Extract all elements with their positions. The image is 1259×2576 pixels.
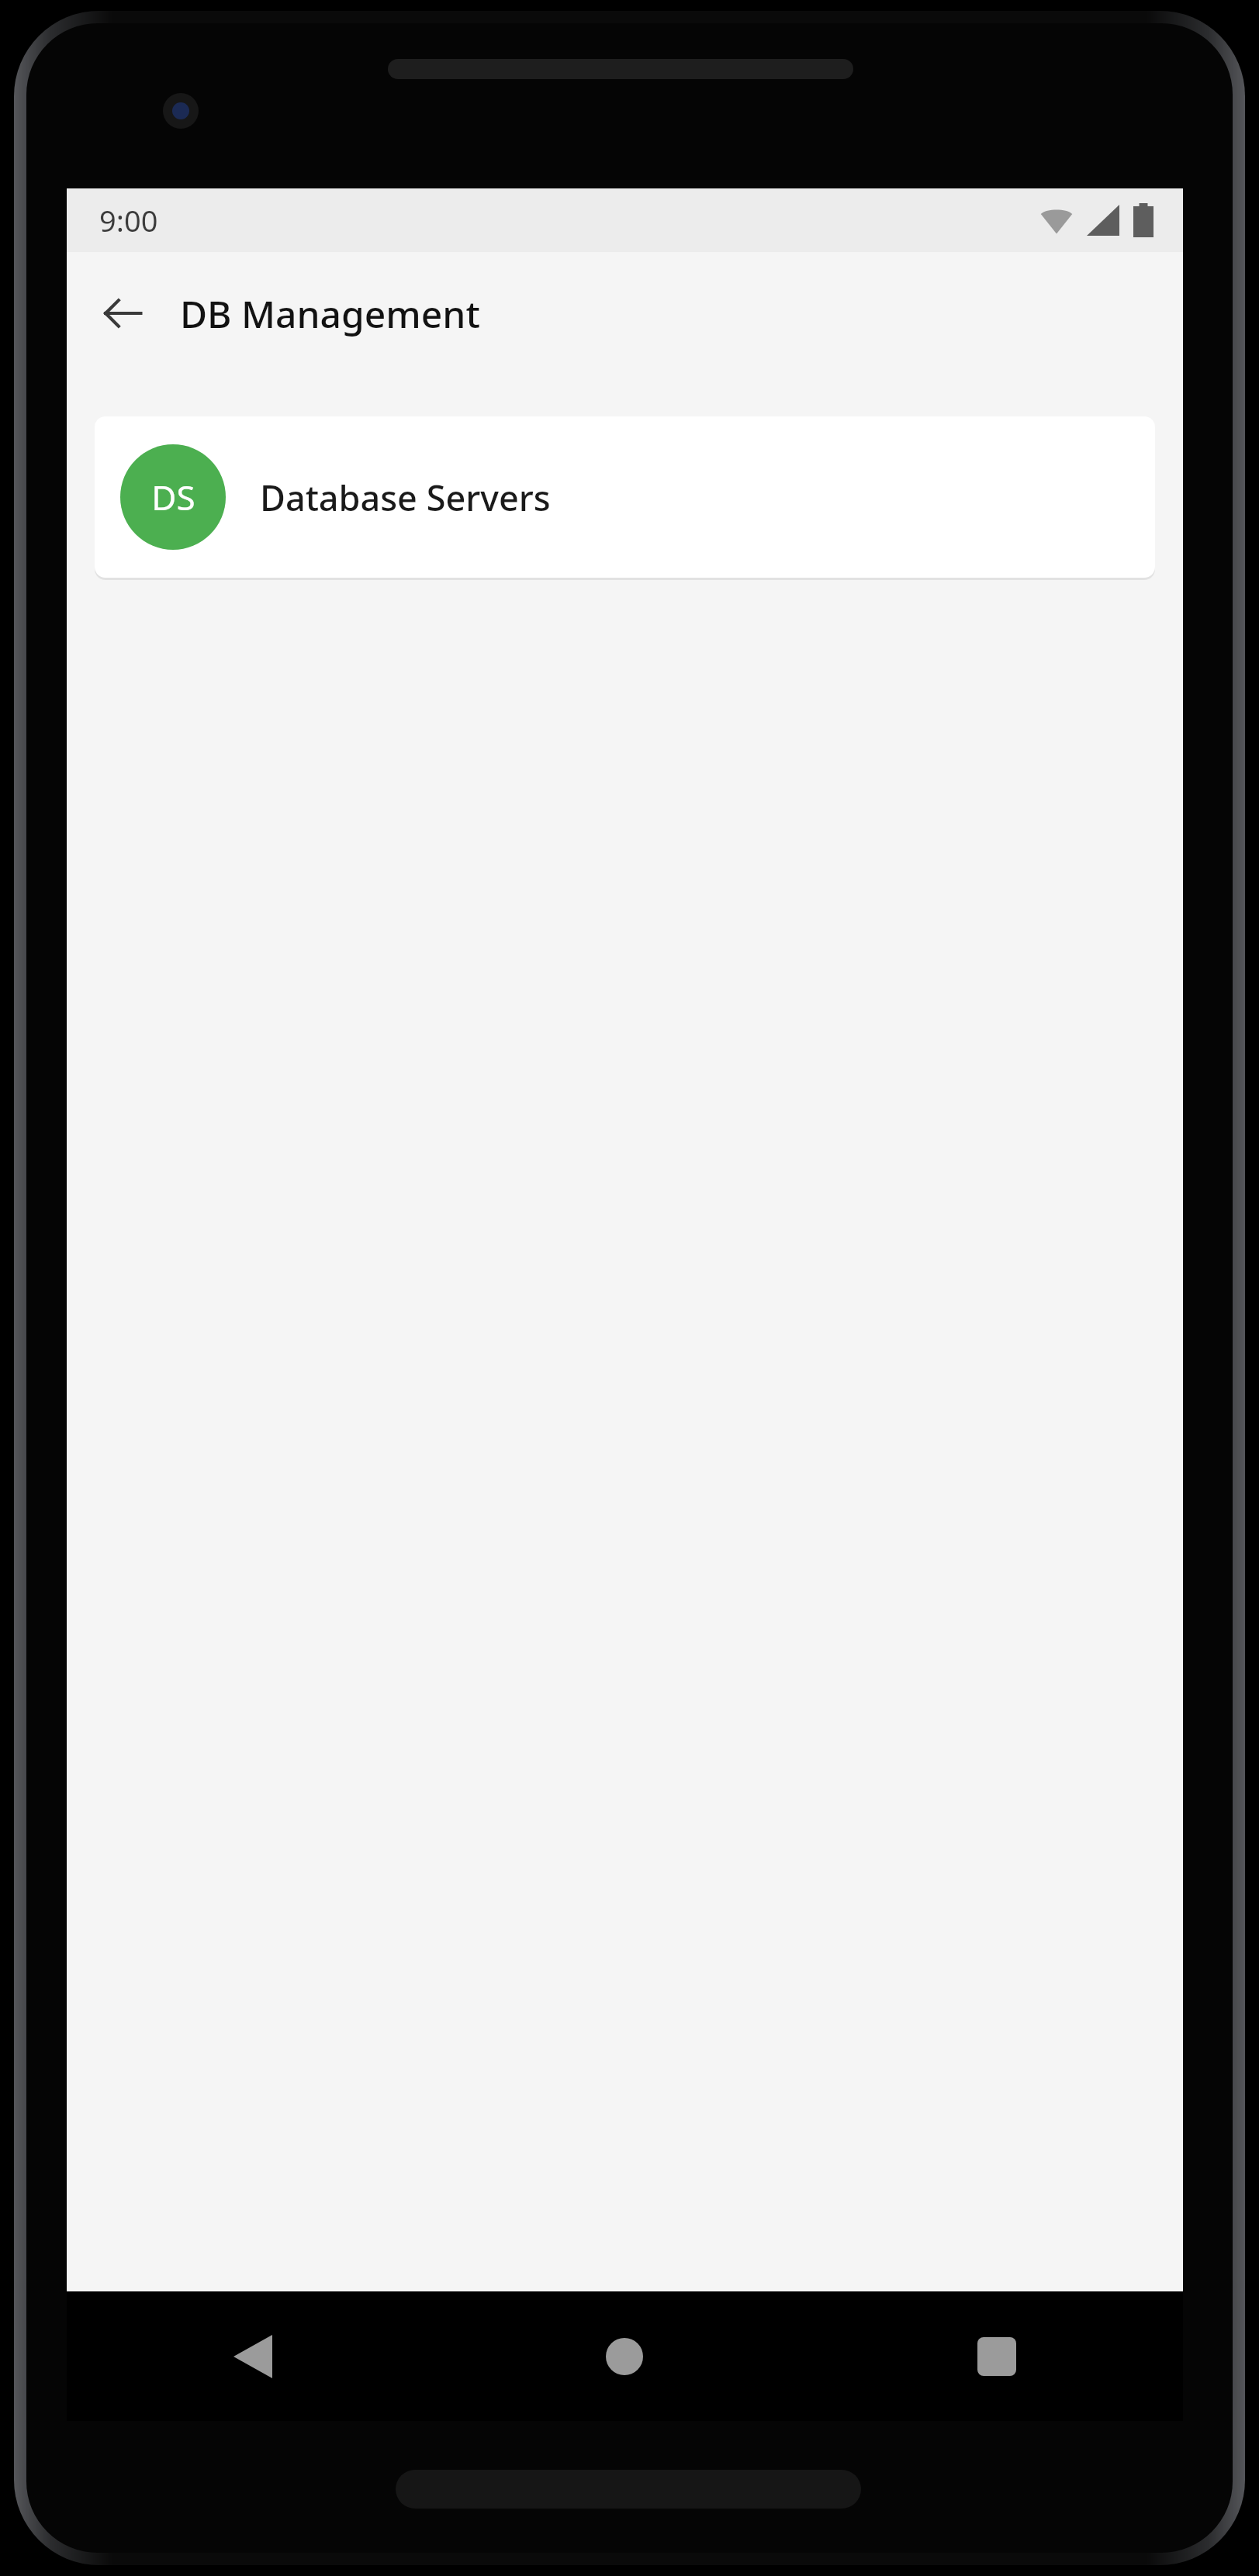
staticText: 9:00	[99, 200, 158, 240]
staticText: DB Management	[180, 288, 480, 339]
button[interactable]: Recent apps	[811, 2291, 1183, 2421]
button[interactable]: Home	[438, 2291, 811, 2421]
button[interactable]: DS	[95, 416, 1155, 578]
button[interactable]: Back	[67, 2291, 438, 2421]
staticText: DS	[151, 474, 195, 520]
button[interactable]: Back	[84, 275, 161, 352]
staticText: Database Servers	[260, 474, 551, 521]
